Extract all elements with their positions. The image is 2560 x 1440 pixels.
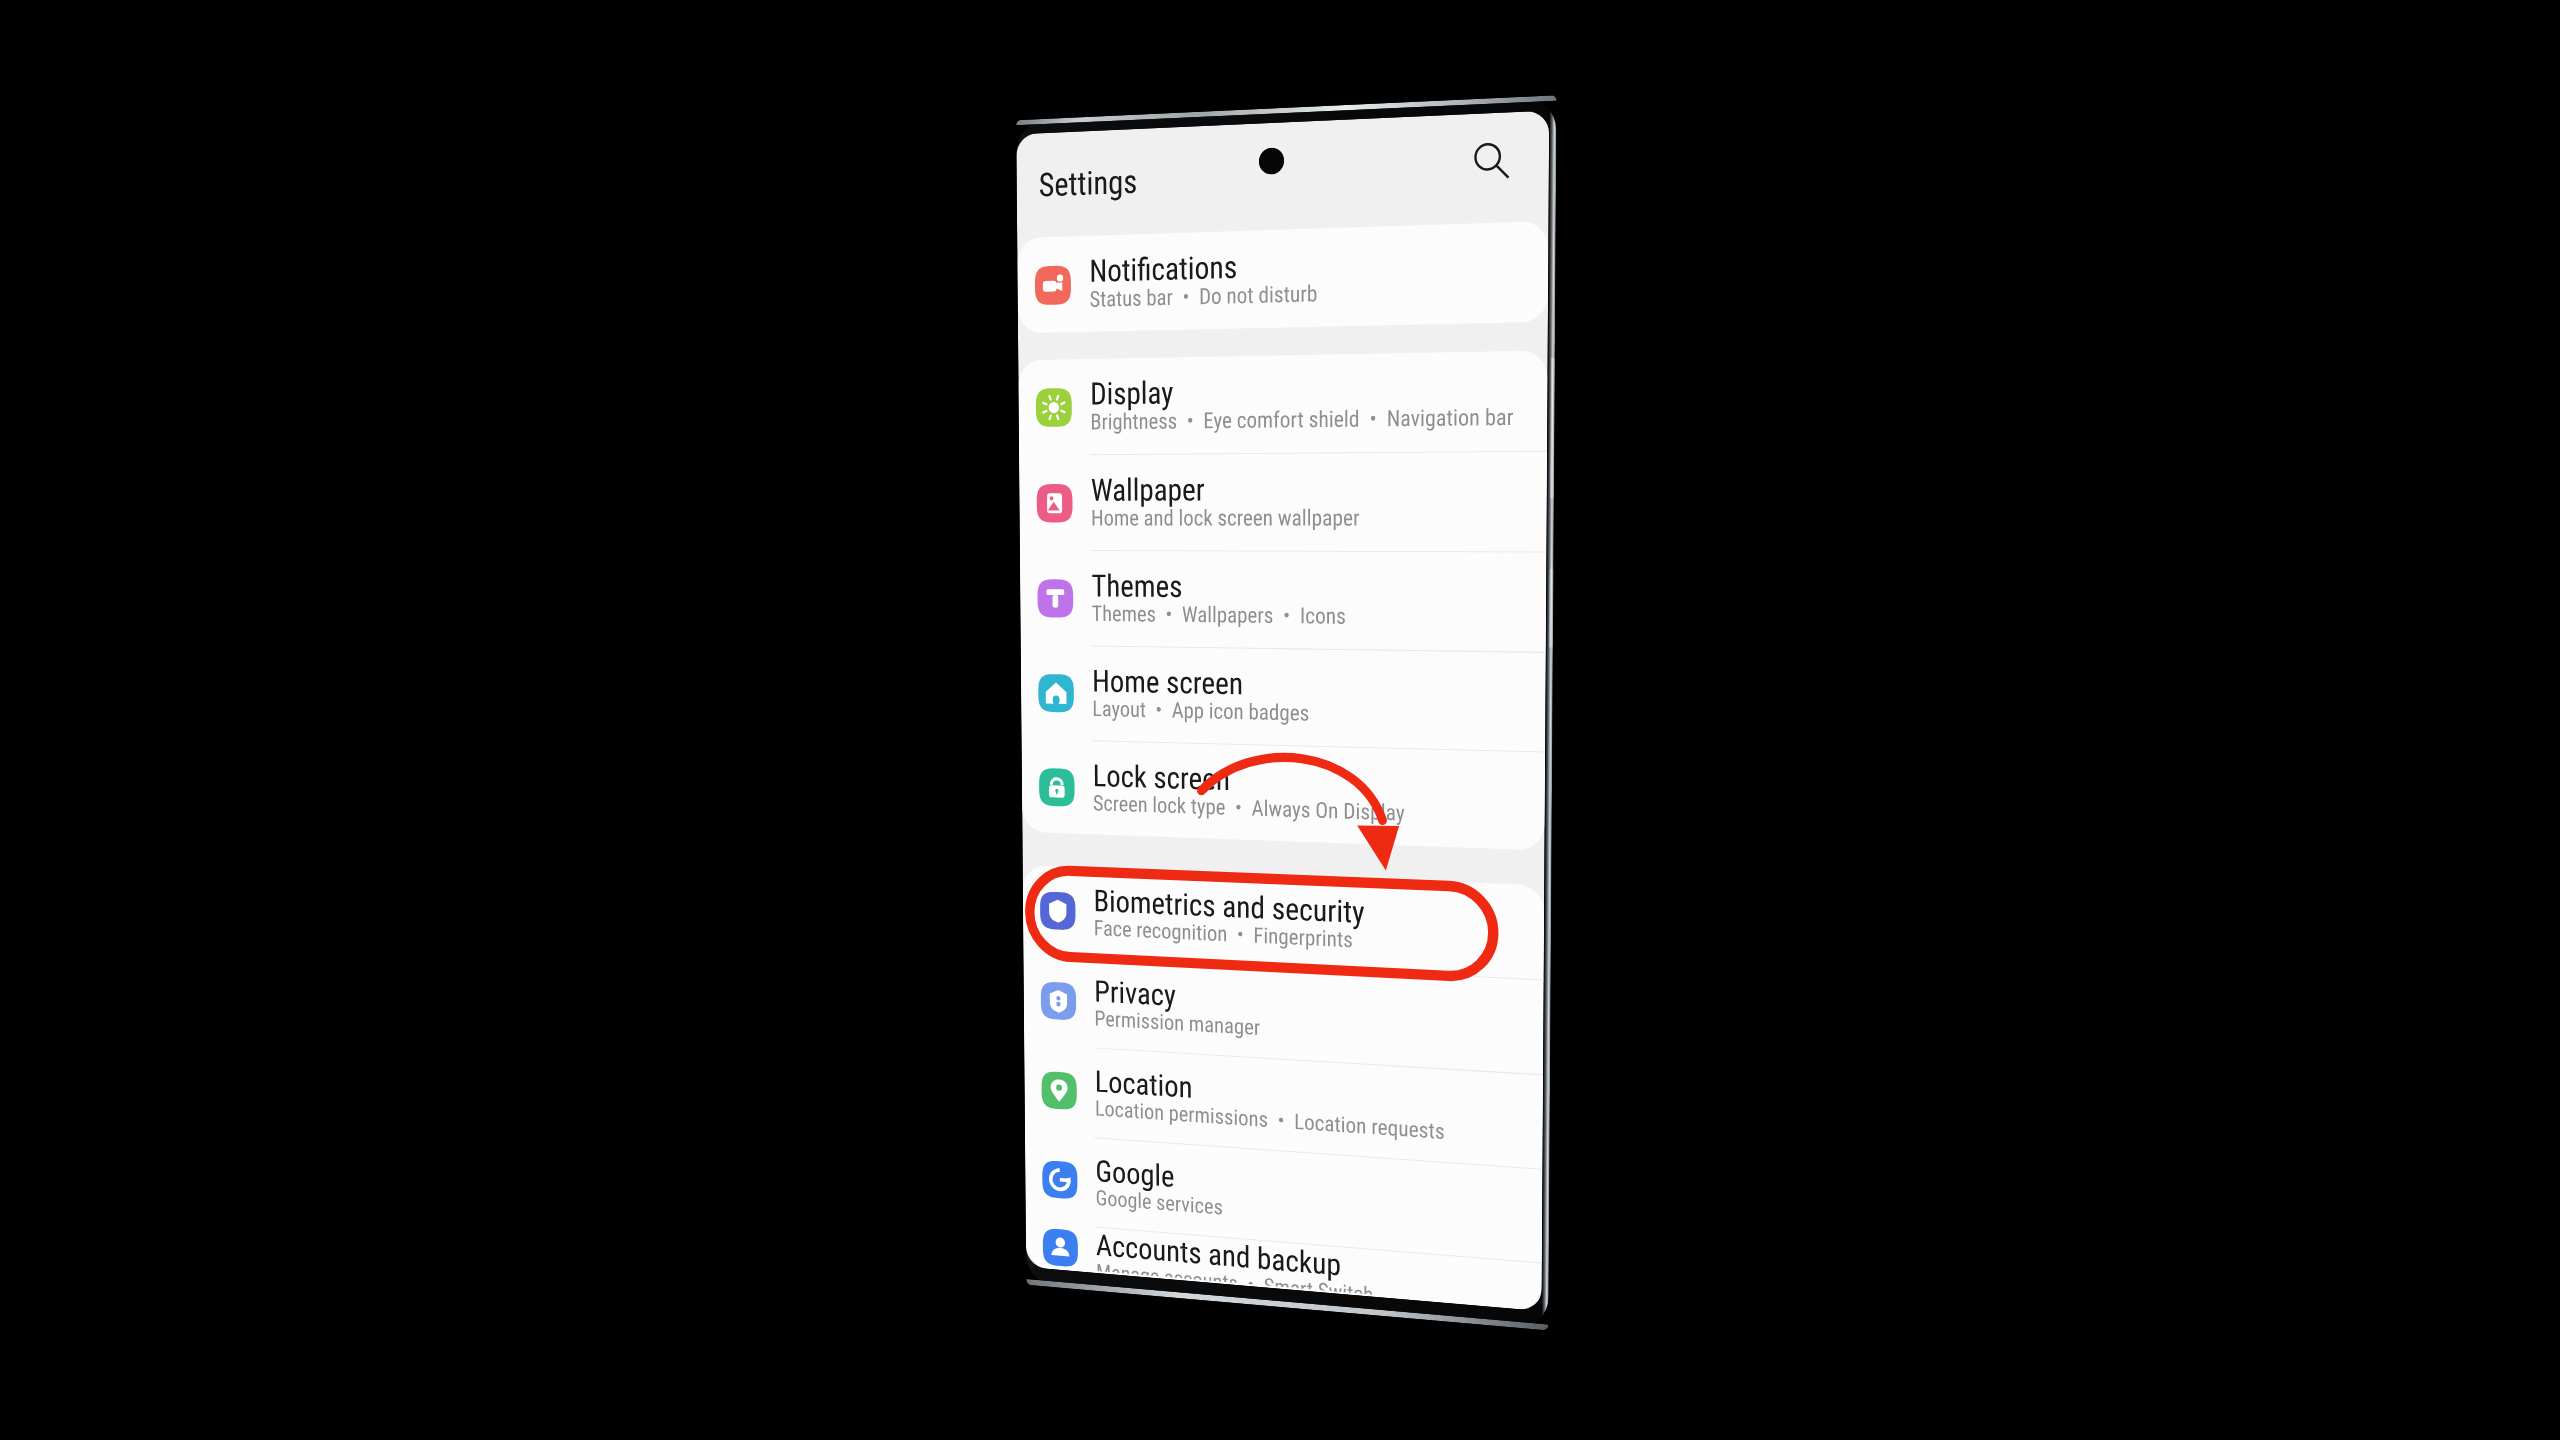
- button[interactable]: Biometrics and security: [1023, 865, 1544, 980]
- button[interactable]: Themes: [1020, 551, 1546, 652]
- staticText: Home screen: [1092, 663, 1244, 701]
- staticText: Biometrics and security: [1093, 883, 1365, 930]
- staticText: Location permissions • Location requests: [1095, 1096, 1445, 1145]
- staticText: Google services: [1095, 1186, 1223, 1220]
- button[interactable]: Google: [1025, 1133, 1542, 1262]
- staticText: Face recognition • Fingerprints: [1094, 916, 1353, 953]
- button[interactable]: Privacy: [1023, 955, 1544, 1074]
- staticText: Permission manager: [1094, 1006, 1260, 1041]
- staticText: Location: [1095, 1064, 1193, 1105]
- button[interactable]: Home screen: [1021, 645, 1546, 752]
- staticText: Brightness • Eye comfort shield • Naviga…: [1090, 404, 1514, 435]
- staticText: Screen lock type • Always On Display: [1093, 791, 1405, 827]
- button[interactable]: Accounts and backup: [1026, 1222, 1542, 1311]
- staticText: Display: [1090, 374, 1174, 411]
- button[interactable]: Lock screen: [1021, 739, 1545, 851]
- staticText: Notifications: [1089, 248, 1238, 289]
- staticText: Themes • Wallpapers • Icons: [1092, 601, 1347, 630]
- staticText: Manage accounts • Smart Switch: [1096, 1260, 1374, 1295]
- staticText: Settings: [1039, 162, 1138, 204]
- staticText: Wallpaper: [1091, 471, 1205, 508]
- button[interactable]: Display: [1018, 350, 1548, 455]
- staticText: Accounts and backup: [1096, 1227, 1341, 1282]
- staticText: Home and lock screen wallpaper: [1091, 505, 1360, 532]
- button[interactable]: Notifications: [1017, 221, 1548, 333]
- staticText: Lock screen: [1093, 758, 1231, 797]
- staticText: Google: [1095, 1153, 1175, 1194]
- staticText: Themes: [1091, 568, 1183, 604]
- button[interactable]: Location: [1024, 1044, 1543, 1169]
- button[interactable]: Wallpaper: [1019, 452, 1547, 552]
- staticText: Layout • App icon badges: [1092, 696, 1310, 727]
- button[interactable]: Search: [1464, 131, 1519, 190]
- staticText: Status bar • Do not disturb: [1089, 281, 1317, 313]
- staticText: Privacy: [1094, 974, 1176, 1013]
